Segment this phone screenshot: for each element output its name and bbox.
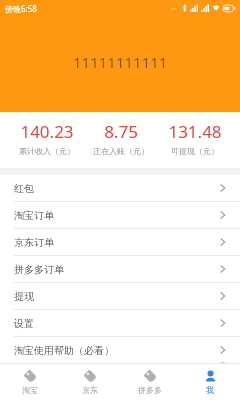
button[interactable]: 淘宝使用帮助（必看） bbox=[0, 337, 240, 363]
button[interactable]: 提现 bbox=[0, 283, 240, 309]
staticText: 提现 bbox=[14, 290, 220, 303]
staticText: 设置 bbox=[14, 317, 220, 330]
staticText: 我 bbox=[206, 385, 214, 395]
staticText: 正在入账（元） bbox=[93, 146, 149, 156]
staticText: 淘宝使用帮助（必看） bbox=[14, 344, 220, 357]
staticText: 京东 bbox=[82, 385, 98, 395]
button[interactable]: 拼多多 bbox=[120, 363, 180, 400]
staticText: 淘宝 bbox=[22, 385, 38, 395]
button[interactable]: 京东 bbox=[60, 363, 120, 400]
staticText: 131.48 bbox=[168, 120, 222, 143]
button[interactable]: 设置 bbox=[0, 310, 240, 336]
staticText: 140.23 bbox=[20, 120, 74, 143]
button[interactable]: 我 bbox=[180, 363, 240, 400]
staticText: 红包 bbox=[14, 182, 220, 195]
staticText: 京东订单 bbox=[14, 236, 220, 249]
staticText: 拼多多订单 bbox=[14, 263, 220, 276]
button[interactable]: 京东订单 bbox=[0, 229, 240, 255]
staticText: 傍晚6:58 bbox=[5, 3, 37, 14]
button[interactable]: 红包 bbox=[0, 175, 240, 201]
staticText: 累计收入（元） bbox=[19, 146, 75, 156]
staticText: 淘宝订单 bbox=[14, 209, 220, 222]
staticText: 拼多多 bbox=[138, 385, 162, 395]
button[interactable]: 拼多多订单 bbox=[0, 256, 240, 282]
button[interactable]: 淘宝订单 bbox=[0, 202, 240, 228]
staticText: 11111111111 bbox=[73, 52, 168, 72]
button[interactable]: 淘宝 bbox=[0, 363, 60, 400]
staticText: 8.75 bbox=[104, 120, 138, 143]
staticText: 可提现（元） bbox=[171, 146, 219, 156]
